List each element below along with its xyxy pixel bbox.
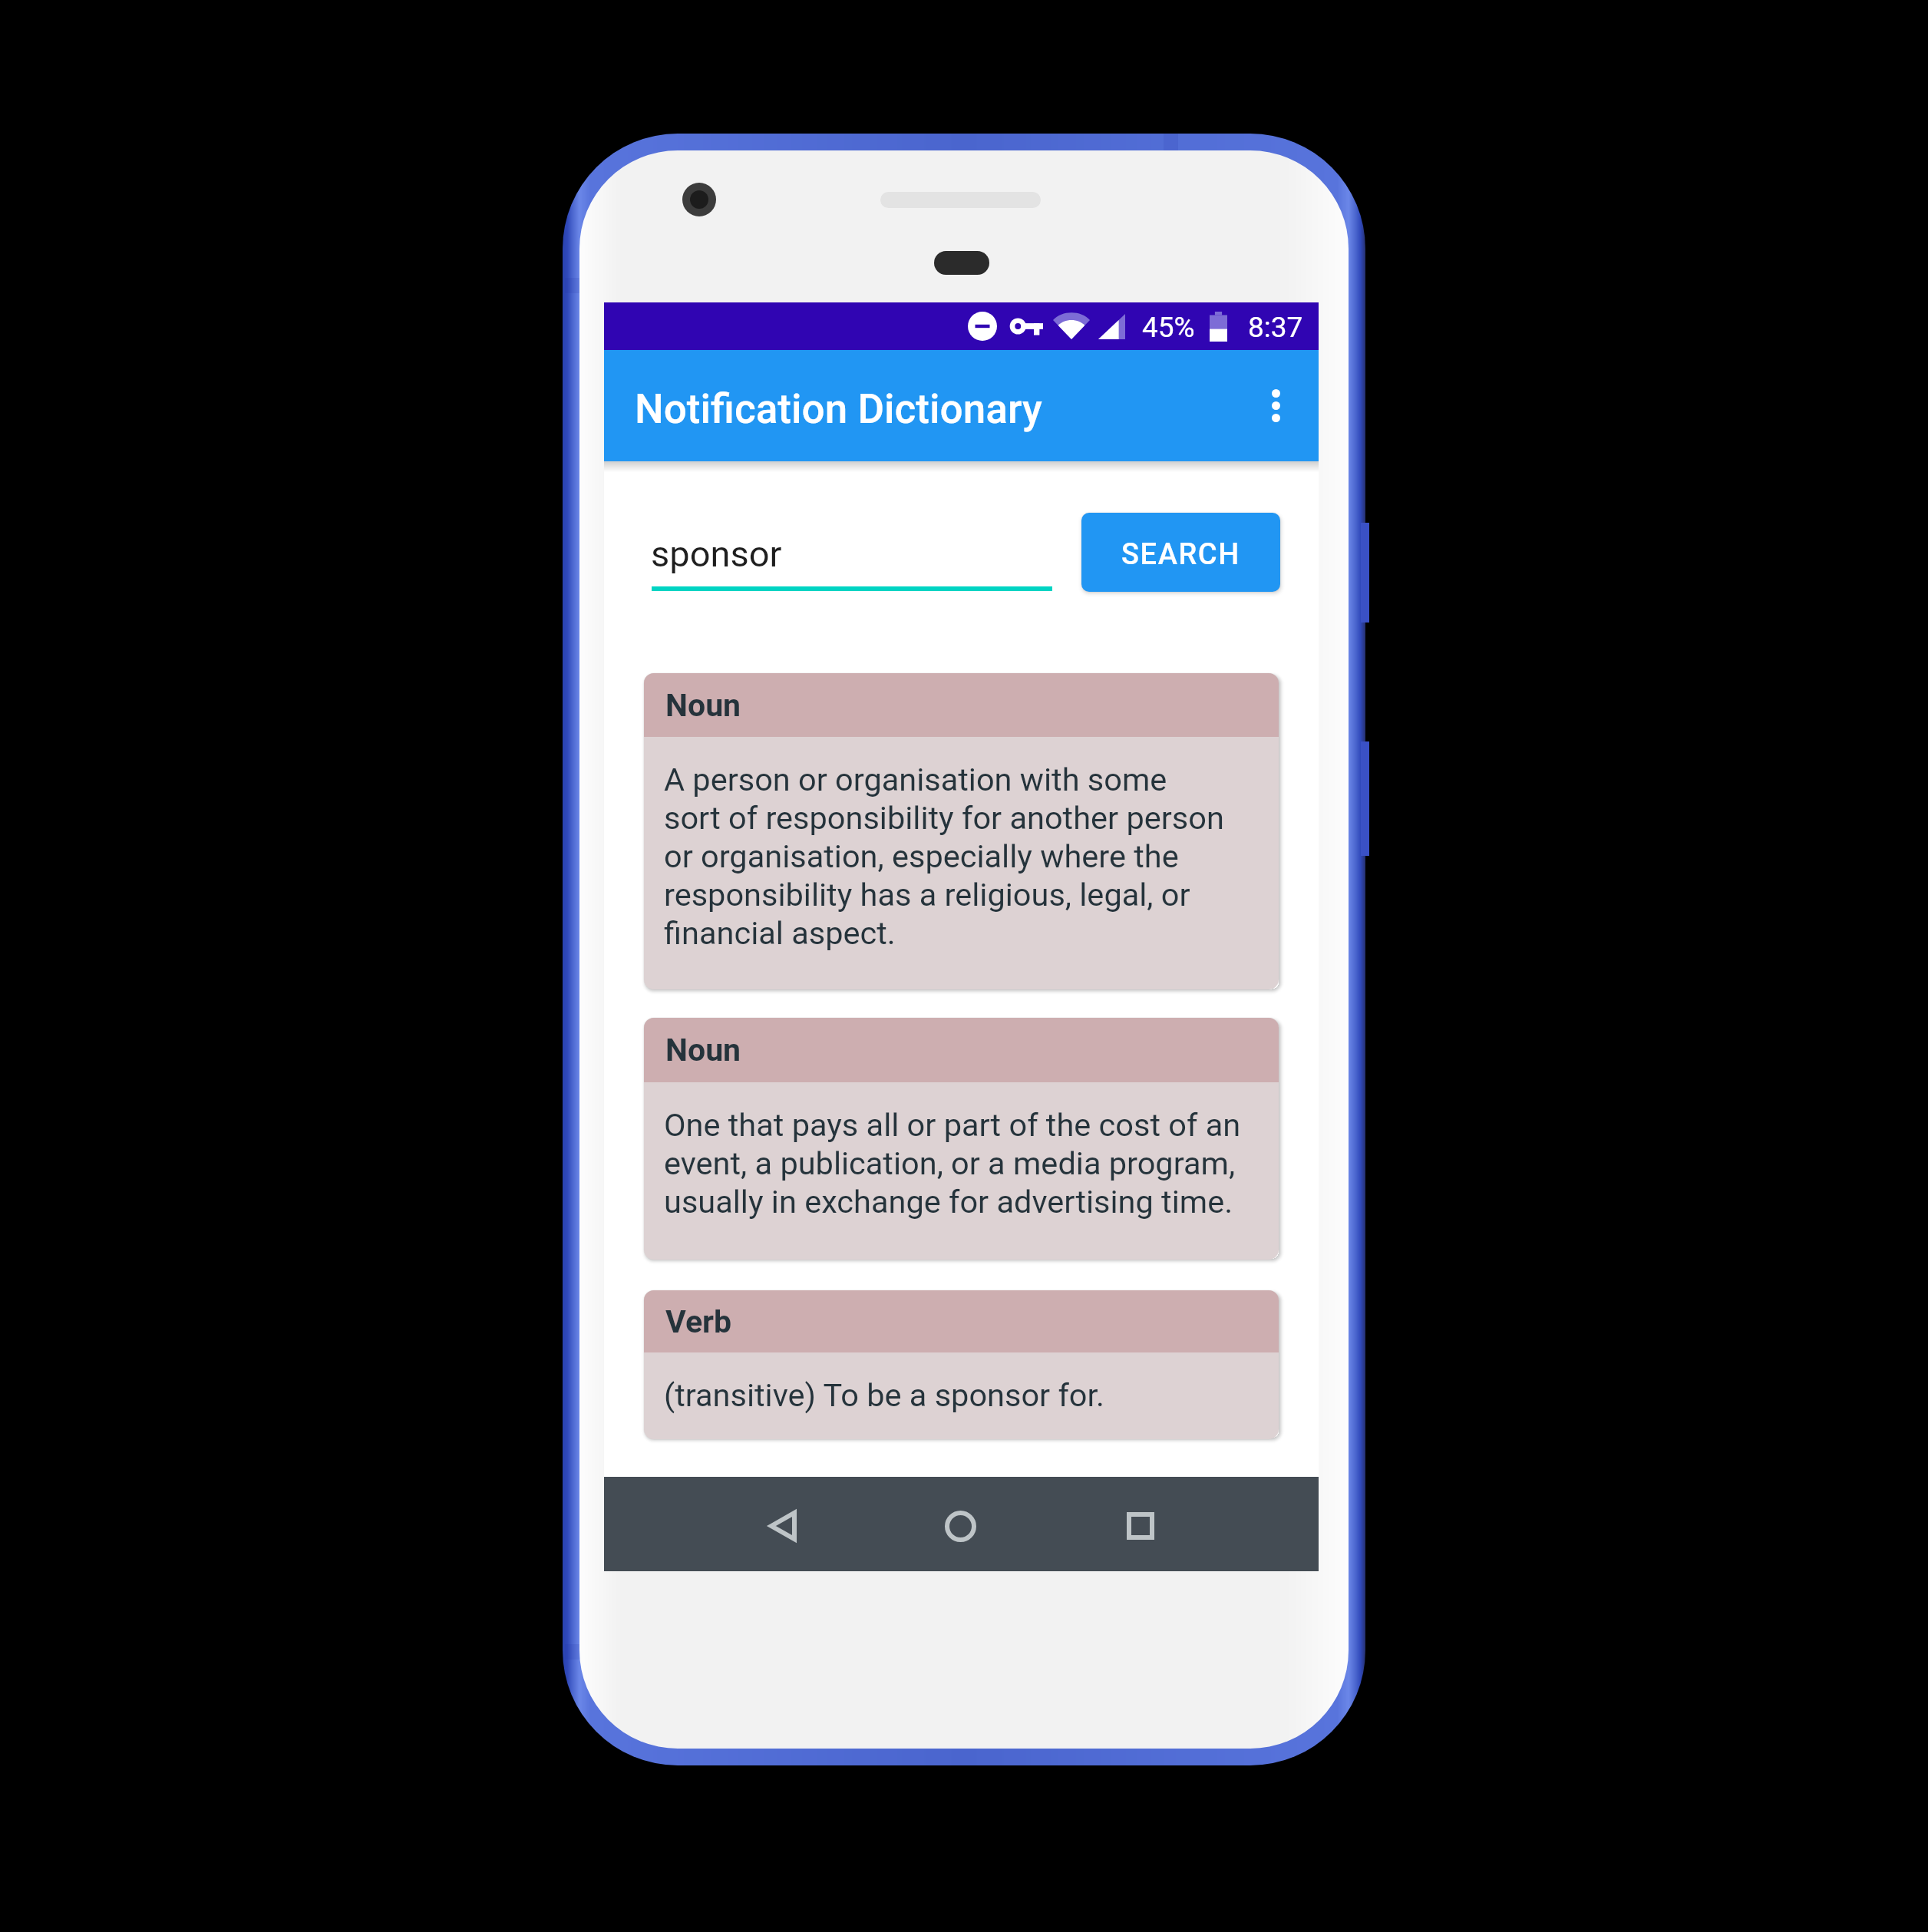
staticText: Noun [665, 687, 741, 724]
button[interactable]: Noun [644, 1018, 1279, 1260]
button[interactable]: More options [1233, 350, 1319, 461]
button[interactable]: Noun [644, 673, 1279, 989]
button[interactable]: Verb [644, 1290, 1279, 1439]
button[interactable]: sponsor [652, 525, 1052, 591]
staticText: Noun [665, 1032, 741, 1068]
staticText: A person or organisation with some sort … [664, 761, 1224, 953]
staticText: 8:37 [1248, 311, 1303, 344]
staticText: sponsor [651, 533, 782, 575]
staticText: SEARCH [1121, 537, 1240, 572]
button[interactable]: Back [743, 1486, 823, 1566]
button[interactable]: SEARCH [1081, 513, 1280, 592]
button[interactable]: Recent apps [1101, 1486, 1180, 1566]
button[interactable]: Home [920, 1486, 1000, 1566]
staticText: One that pays all or part of the cost of… [664, 1106, 1241, 1221]
staticText: Notification Dictionary [635, 385, 1042, 433]
staticText: (transitive) To be a sponsor for. [664, 1376, 1105, 1415]
staticText: Verb [665, 1303, 732, 1340]
staticText: 45% [1142, 311, 1195, 344]
